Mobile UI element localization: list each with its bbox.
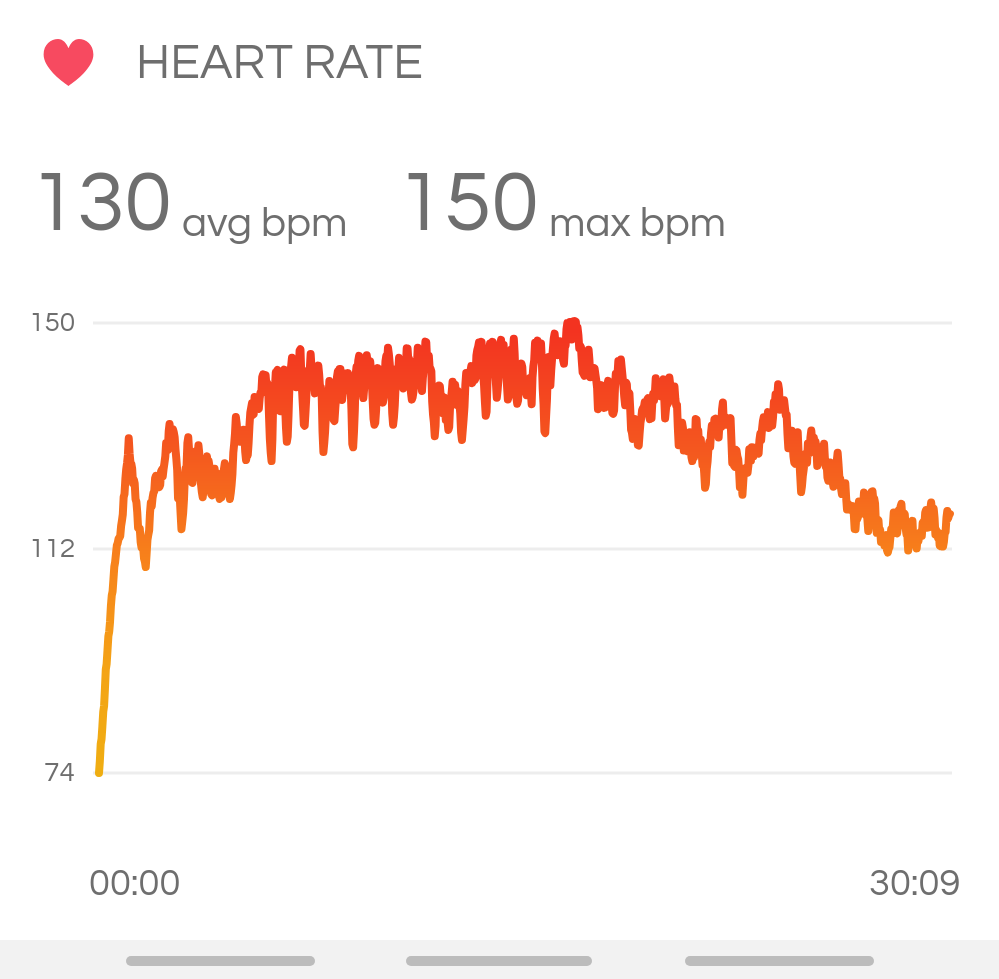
button[interactable]: Pace tab <box>392 940 606 979</box>
button[interactable]: Elevation tab <box>671 940 888 979</box>
staticText: avg bpm <box>182 202 348 245</box>
staticText: 112 <box>29 534 76 563</box>
staticText: 74 <box>44 758 75 787</box>
other: Heart rate <box>43 39 94 86</box>
staticText: max bpm <box>549 202 727 245</box>
staticText: 150 <box>397 159 539 248</box>
button[interactable]: Heart rate <box>43 39 424 89</box>
button[interactable]: Heart rate tab <box>112 940 329 979</box>
staticText: 00:00 <box>89 864 181 903</box>
staticText: 30:09 <box>869 864 961 903</box>
staticText: 130 <box>30 159 172 248</box>
staticText: HEART RATE <box>136 38 424 88</box>
staticText: 150 <box>29 308 76 337</box>
